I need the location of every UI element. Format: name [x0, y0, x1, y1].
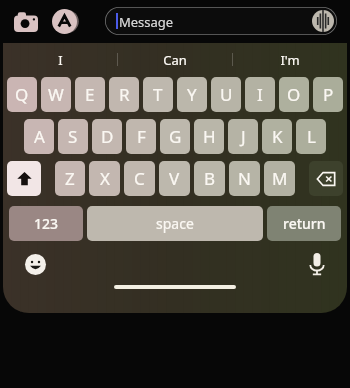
button[interactable]: I	[245, 77, 275, 112]
button[interactable]: Apps	[52, 9, 77, 34]
button[interactable]: T	[143, 77, 173, 112]
staticText: C	[134, 167, 145, 190]
staticText: B	[204, 167, 216, 190]
button[interactable]: U	[211, 77, 241, 112]
button[interactable]: H	[194, 119, 224, 154]
staticText: S	[68, 125, 78, 148]
button[interactable]: Q	[7, 77, 37, 112]
staticText: H	[203, 125, 216, 148]
button[interactable]: Message	[105, 7, 337, 35]
staticText: U	[220, 83, 233, 106]
button[interactable]: M	[264, 161, 295, 196]
staticText: P	[323, 83, 334, 106]
button[interactable]: Record audio	[312, 10, 334, 32]
staticText: W	[48, 83, 64, 106]
button[interactable]: Y	[177, 77, 207, 112]
button[interactable]: F	[126, 119, 156, 154]
staticText: Message	[119, 13, 174, 31]
staticText: I'm	[280, 51, 300, 69]
button[interactable]: Can	[118, 44, 232, 75]
button[interactable]: G	[160, 119, 190, 154]
button[interactable]: 123	[9, 206, 83, 241]
staticText: I	[58, 51, 63, 69]
button[interactable]: C	[124, 161, 155, 196]
button[interactable]: Shift	[7, 161, 41, 196]
staticText: Can	[163, 51, 187, 69]
staticText: Q	[15, 83, 29, 106]
staticText: E	[85, 83, 95, 106]
button[interactable]: X	[89, 161, 120, 196]
button[interactable]: Z	[55, 161, 85, 196]
button[interactable]: O	[279, 77, 309, 112]
button[interactable]: Emoji	[25, 254, 46, 275]
staticText: A	[34, 125, 45, 148]
button[interactable]: D	[92, 119, 122, 154]
staticText: K	[272, 125, 283, 148]
button[interactable]: P	[313, 77, 343, 112]
button[interactable]: V	[159, 161, 190, 196]
staticText: L	[307, 125, 316, 148]
button[interactable]: B	[194, 161, 225, 196]
staticText: M	[272, 167, 288, 190]
button[interactable]: A	[24, 119, 54, 154]
button[interactable]: I	[3, 44, 117, 75]
button[interactable]: Backspace	[309, 161, 343, 196]
button[interactable]: J	[228, 119, 258, 154]
button[interactable]: Dictation	[309, 252, 325, 276]
staticText: X	[100, 167, 110, 190]
staticText: V	[169, 167, 180, 190]
button[interactable]: return	[267, 206, 341, 241]
button[interactable]: space	[87, 206, 263, 241]
button[interactable]: N	[229, 161, 260, 196]
button[interactable]: I'm	[233, 44, 347, 75]
staticText: G	[169, 125, 182, 148]
button[interactable]: R	[109, 77, 139, 112]
button[interactable]: Camera	[14, 11, 38, 32]
staticText: return	[283, 214, 326, 233]
staticText: J	[241, 125, 246, 148]
button[interactable]: K	[262, 119, 292, 154]
staticText: Z	[65, 167, 75, 190]
staticText: N	[238, 167, 251, 190]
staticText: space	[156, 214, 194, 233]
staticText: Y	[187, 83, 197, 106]
staticText: O	[287, 83, 301, 106]
button[interactable]: S	[58, 119, 88, 154]
staticText: R	[119, 83, 130, 106]
button[interactable]: L	[296, 119, 326, 154]
button[interactable]: W	[41, 77, 71, 112]
staticText: F	[137, 125, 146, 148]
staticText: I	[257, 83, 263, 106]
staticText: T	[153, 83, 163, 106]
staticText: 123	[34, 214, 59, 233]
staticText: D	[101, 125, 114, 148]
button[interactable]: E	[75, 77, 105, 112]
